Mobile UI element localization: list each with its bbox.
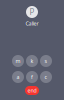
button[interactable]: End call	[25, 86, 39, 95]
staticText: s	[44, 57, 47, 65]
button[interactable]: k	[26, 55, 38, 67]
staticText: f	[31, 73, 33, 81]
button[interactable]: m	[12, 55, 24, 67]
staticText: Caller	[25, 20, 38, 27]
button[interactable]: a	[12, 71, 24, 83]
staticText: P	[29, 7, 34, 17]
staticText: end	[27, 87, 36, 94]
button[interactable]: s	[40, 55, 52, 67]
button[interactable]: f	[26, 71, 38, 83]
staticText: c	[44, 73, 47, 81]
button[interactable]: c	[40, 71, 52, 83]
staticText: m	[15, 57, 20, 65]
staticText: a	[16, 73, 19, 81]
staticText: k	[30, 57, 33, 65]
